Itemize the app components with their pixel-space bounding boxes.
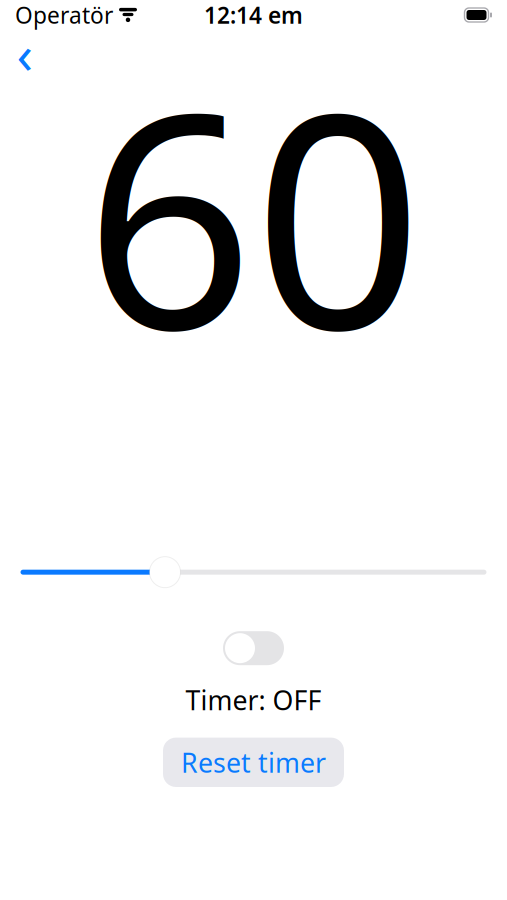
button[interactable]: Timer (223, 631, 284, 665)
button[interactable]: Back (2, 31, 48, 75)
staticText: Reset timer (181, 745, 326, 780)
staticText: Operatör (15, 0, 113, 30)
staticText: 60 (84, 17, 422, 411)
staticText: Timer: OFF (185, 682, 321, 718)
button[interactable]: Reset timer (163, 738, 344, 787)
staticText: 12:14 em (204, 0, 303, 30)
staticText: ‹ (16, 18, 33, 88)
